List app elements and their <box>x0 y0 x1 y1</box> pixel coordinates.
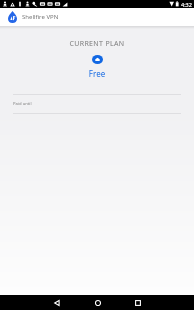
staticText: CURRENT PLAN <box>0 39 194 49</box>
button[interactable]: Back <box>49 295 64 310</box>
staticText: Shellfire VPN <box>22 13 59 21</box>
staticText: 4:32 <box>181 1 192 8</box>
staticText: Paid until <box>13 101 32 107</box>
button[interactable]: Paid until <box>0 95 194 113</box>
button[interactable]: Home <box>90 295 105 310</box>
button[interactable]: Recent apps <box>130 295 145 310</box>
staticText: Free <box>0 68 194 79</box>
